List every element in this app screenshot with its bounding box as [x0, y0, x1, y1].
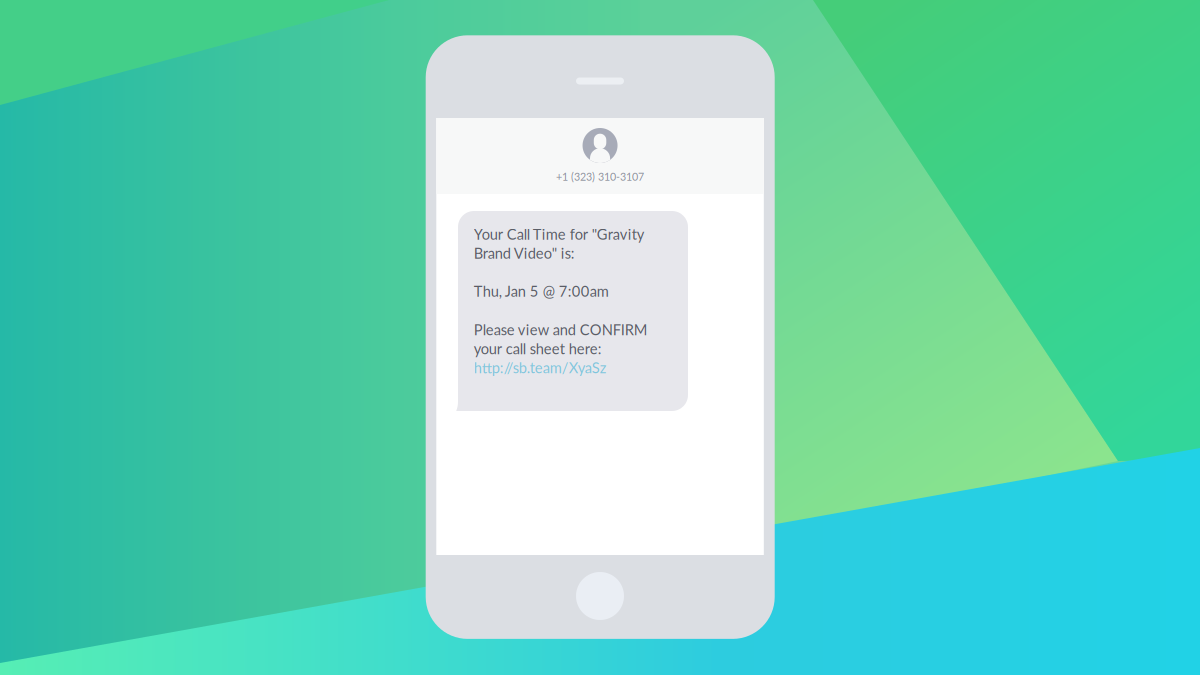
staticText: your call sheet here: [474, 340, 602, 357]
staticText: http://sb.team/XyaSz [474, 359, 607, 376]
staticText: Thu, Jan 5 @ 7:00am [474, 282, 609, 300]
staticText: +1 (323) 310-3107 [556, 170, 644, 183]
staticText: Please view and CONFIRM [474, 321, 648, 338]
button[interactable]: +1 (323) 310-3107 [436, 118, 764, 194]
staticText: Brand Video" is: [474, 244, 575, 262]
staticText: Your Call Time for "Gravity [474, 225, 645, 243]
